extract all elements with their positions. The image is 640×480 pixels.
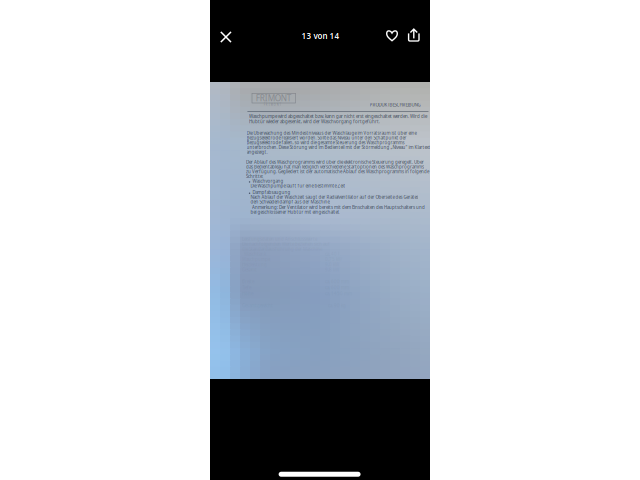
staticText: 13 von 14	[301, 31, 339, 41]
staticText: Die nachfolgenden Werte beziehen sich au…	[242, 241, 330, 247]
staticText: Der Ablauf des Waschprogramms wird über …	[246, 159, 424, 165]
staticText: den Schwadendampf aus der Maschine.	[250, 199, 330, 205]
staticText: zu Verfügung. Gegliedert ist der automat…	[246, 169, 429, 175]
staticText: Nach Ablauf der Waschzeit saugt der Radi…	[250, 194, 418, 200]
staticText: FRIMONT	[256, 92, 292, 104]
button[interactable]: Share	[399, 20, 429, 50]
staticText: Bezugselektrode fallen, so wird die gesa…	[246, 139, 404, 145]
staticText: bei geschlossener Hubtür mit eingeschalt…	[250, 209, 340, 215]
staticText: das Bedientableau hat man lediglich vers…	[246, 164, 424, 170]
button[interactable]: Close	[211, 22, 241, 52]
staticText: Anmerkung: Der Ventilator wird bereits m…	[252, 204, 425, 210]
staticText: Hubtür wieder abgesenkt, wird der Waschv…	[249, 118, 380, 124]
staticText: Schritte:	[246, 173, 263, 179]
staticText: die Standardausführung der Maschine	[242, 246, 322, 252]
staticText: Waschvorgang	[252, 178, 283, 184]
staticText: Dampfabsaugung	[252, 189, 290, 195]
staticText: PRODUKTBESCHREIBUNG	[369, 102, 420, 108]
button[interactable]: 13 von 14	[285, 21, 355, 51]
staticText: Leistungsdaten und Anschlusswerte	[242, 236, 317, 242]
staticText: Bezugselektrode realisiert worden. Sollt…	[246, 135, 406, 141]
staticText: Die Überwachung des Mindestniveaus der W…	[246, 130, 416, 136]
staticText: unterbrochen. Diese Störung wird im Bedi…	[246, 144, 430, 150]
staticText: F R I M O N T	[264, 103, 281, 107]
staticText: Die Waschpumpe läuft für eine bestimmte …	[250, 183, 345, 189]
staticText: Waschpumpe wird abgeschaltet bzw. kann g…	[249, 113, 427, 119]
button[interactable]: Favorite	[377, 20, 407, 50]
staticText: angezeigt.	[246, 149, 267, 155]
